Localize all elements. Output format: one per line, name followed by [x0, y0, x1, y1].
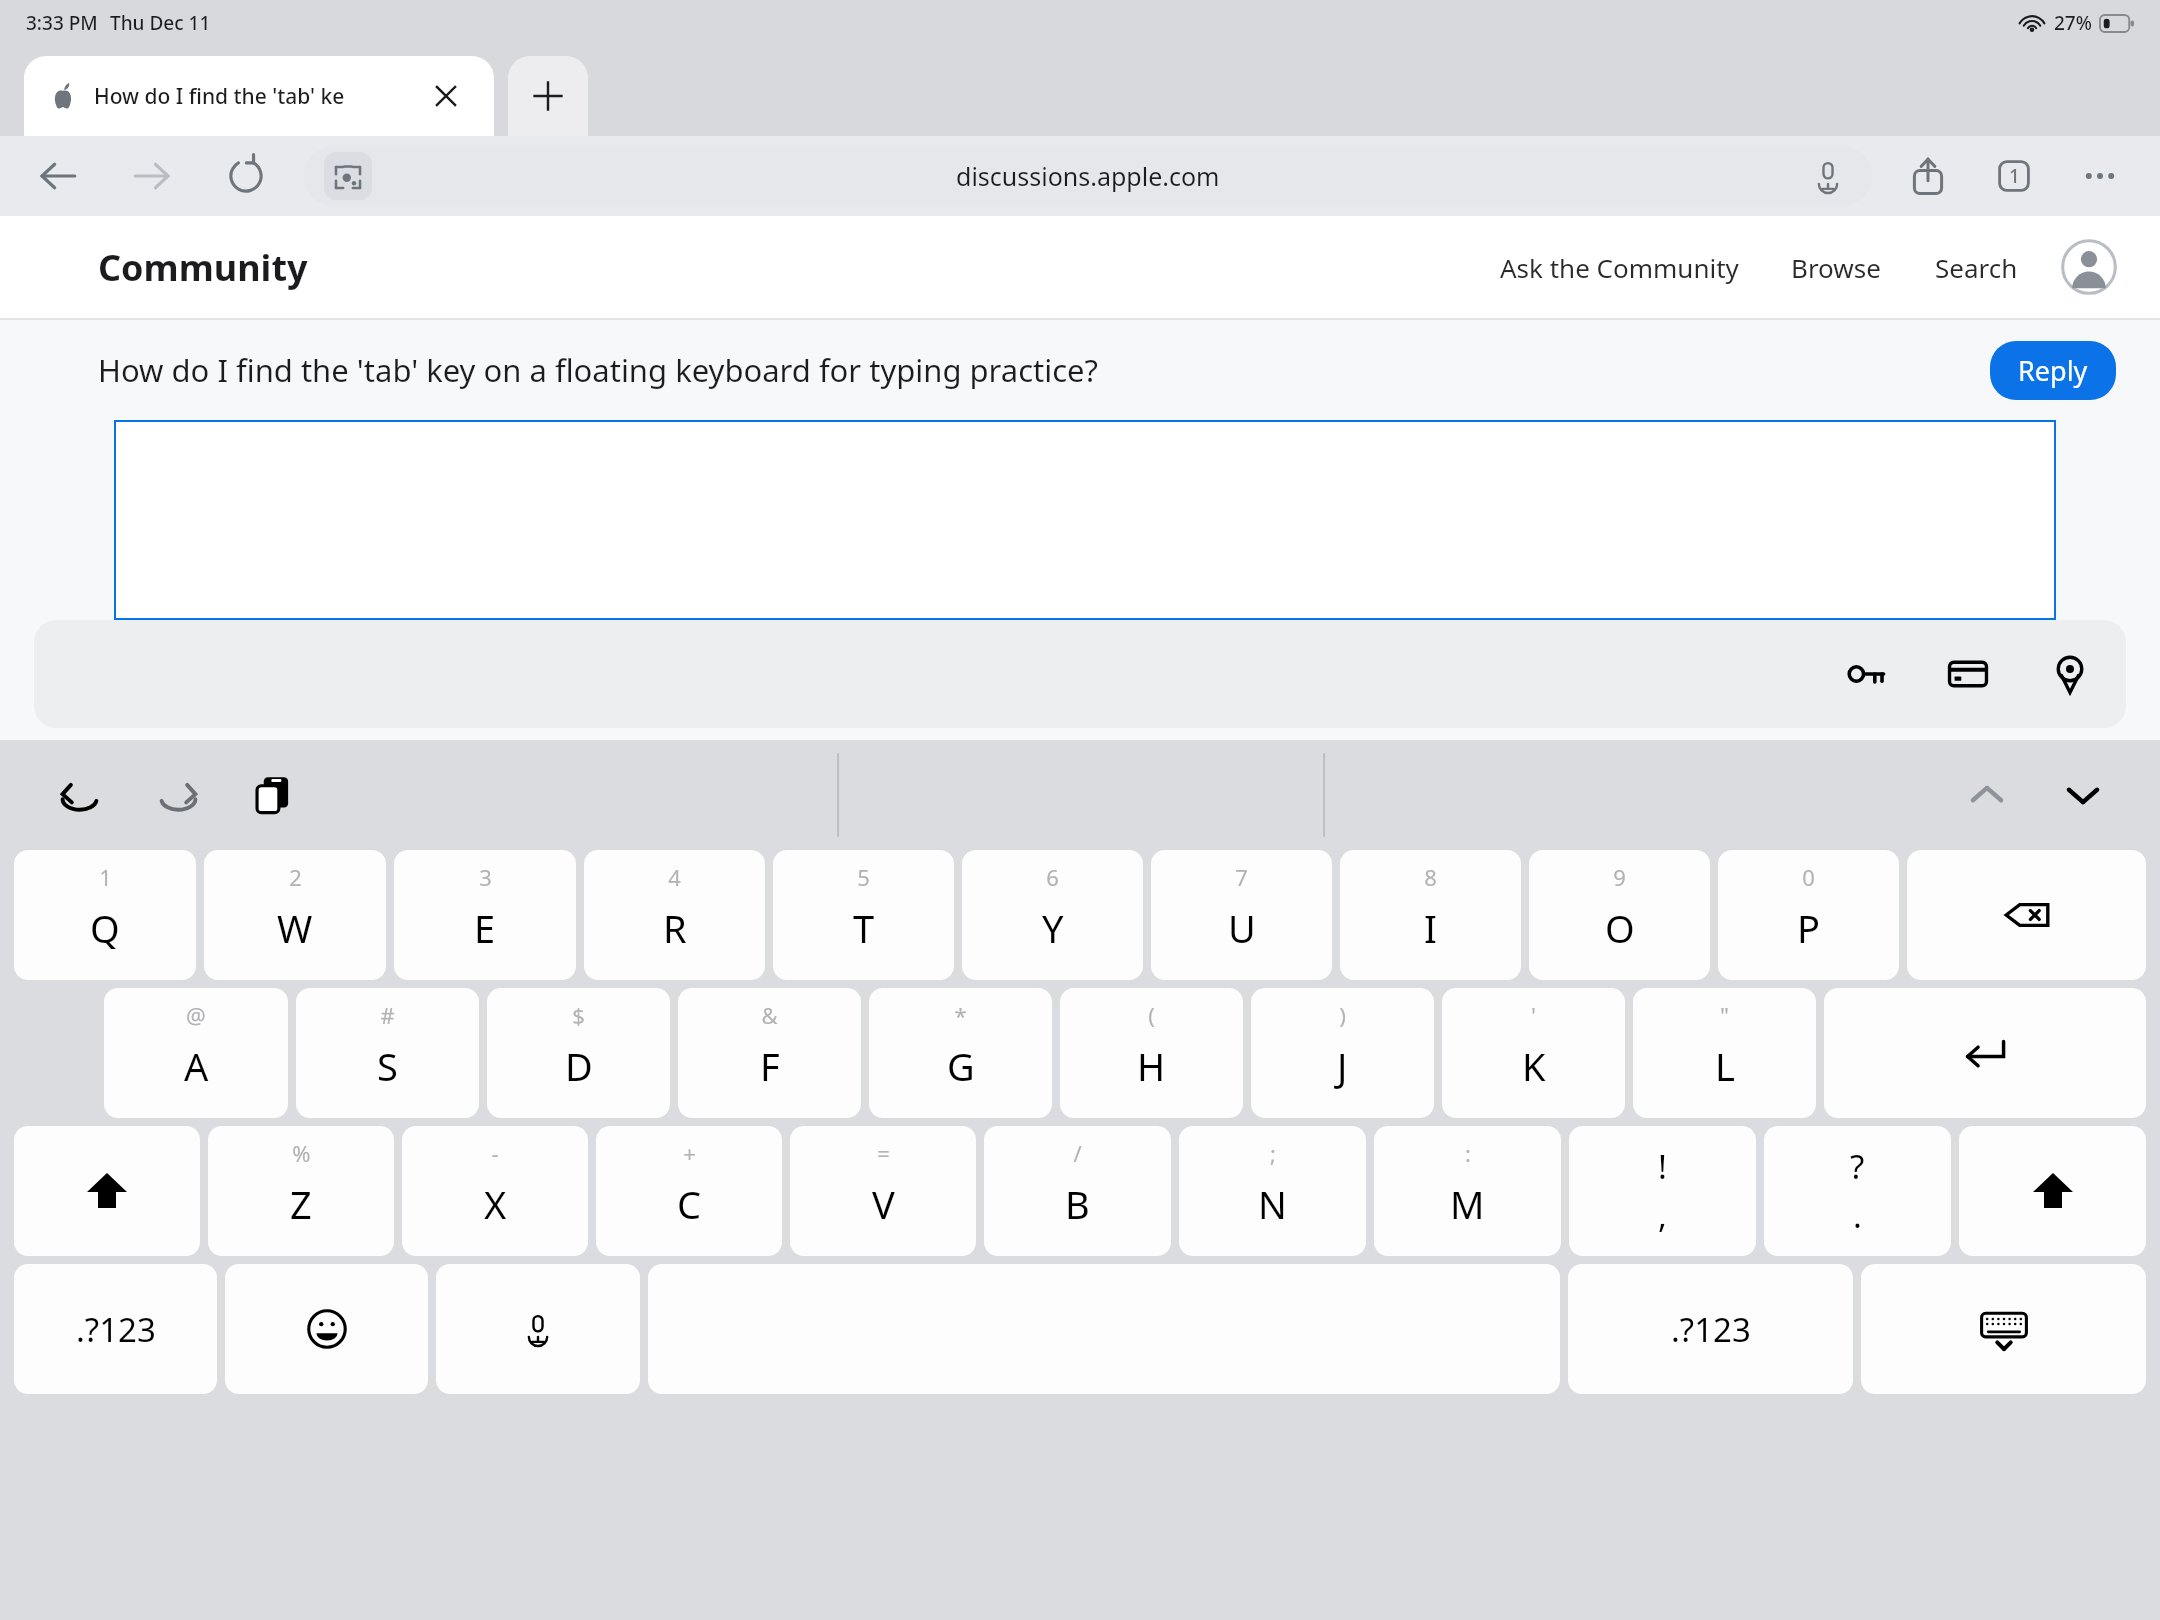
button[interactable]: .?123 — [1568, 1264, 1853, 1394]
button[interactable]: 9 — [1529, 850, 1710, 980]
button[interactable]: Paste — [242, 764, 304, 826]
staticText: .?123 — [1671, 1307, 1751, 1352]
button[interactable]: Address — [2040, 644, 2100, 704]
button[interactable]: Dictation — [436, 1264, 640, 1394]
staticText: Community — [98, 243, 308, 292]
staticText: V — [872, 1178, 895, 1230]
button[interactable]: Passwords — [1836, 644, 1896, 704]
button[interactable]: Shift — [1959, 1126, 2146, 1256]
staticText: # — [380, 1000, 395, 1030]
button[interactable]: Credit card — [1938, 644, 1998, 704]
button[interactable]: 5 — [773, 850, 954, 980]
button[interactable]: # — [296, 988, 479, 1118]
staticText: $ — [572, 1000, 585, 1030]
staticText: Browse — [1791, 250, 1881, 285]
button[interactable]: * — [869, 988, 1052, 1118]
button[interactable]: 0 — [1718, 850, 1899, 980]
staticText: .?123 — [76, 1307, 156, 1352]
staticText: R — [663, 902, 687, 954]
button[interactable]: Voice search — [1804, 152, 1852, 200]
staticText: W — [277, 902, 313, 954]
button[interactable]: Browse — [1785, 240, 1887, 295]
staticText: K — [1522, 1040, 1546, 1092]
staticText: = — [877, 1138, 890, 1168]
button[interactable]: New tab — [508, 56, 588, 136]
button[interactable]: 8 — [1340, 850, 1521, 980]
button[interactable]: Close tab — [426, 76, 466, 116]
button[interactable]: = — [790, 1126, 976, 1256]
staticText: E — [474, 902, 496, 954]
staticText: ' — [1531, 1000, 1536, 1030]
staticText: 9 — [1613, 862, 1626, 892]
button[interactable]: Backspace — [1907, 850, 2146, 980]
staticText: 8 — [1424, 862, 1437, 892]
staticText: P — [1797, 902, 1820, 954]
button[interactable]: - — [402, 1126, 588, 1256]
button[interactable]: Reply — [1990, 341, 2116, 400]
button[interactable]: 7 — [1151, 850, 1332, 980]
button[interactable]: Next field — [2052, 764, 2114, 826]
button[interactable]: Forward — [124, 148, 180, 204]
button[interactable]: Redo — [146, 764, 208, 826]
button[interactable]: ? — [1764, 1126, 1951, 1256]
button[interactable]: discussions.apple.com — [304, 146, 1872, 206]
button[interactable]: Back — [30, 148, 86, 204]
button[interactable]: ) — [1251, 988, 1434, 1118]
button[interactable]: Share — [1900, 148, 1956, 204]
button[interactable]: .?123 — [14, 1264, 217, 1394]
button[interactable]: Account — [2060, 238, 2118, 296]
button[interactable]: ' — [1442, 988, 1625, 1118]
button[interactable]: Return — [1824, 988, 2146, 1118]
staticText: G — [947, 1040, 975, 1092]
button[interactable]: How do I find the 'tab' ke — [24, 56, 494, 136]
button[interactable]: ! — [1569, 1126, 1756, 1256]
staticText: " — [1720, 1000, 1729, 1030]
button[interactable]: & — [678, 988, 861, 1118]
staticText: D — [565, 1040, 593, 1092]
button[interactable] — [114, 420, 2056, 620]
button[interactable]: Shift — [14, 1126, 200, 1256]
button[interactable]: 4 — [584, 850, 765, 980]
button[interactable]: / — [984, 1126, 1171, 1256]
staticText: N — [1258, 1178, 1287, 1230]
button[interactable]: : — [1374, 1126, 1561, 1256]
staticText: C — [677, 1178, 702, 1230]
button[interactable]: $ — [487, 988, 670, 1118]
button[interactable]: 1 — [14, 850, 196, 980]
button[interactable]: @ — [104, 988, 288, 1118]
button[interactable]: Reload — [218, 148, 274, 204]
button[interactable]: % — [208, 1126, 394, 1256]
staticText: A — [184, 1040, 209, 1092]
staticText: + — [683, 1138, 696, 1168]
staticText: : — [1465, 1138, 1471, 1168]
staticText: H — [1137, 1040, 1166, 1092]
staticText: 1 — [2009, 163, 2020, 189]
staticText: 27% — [2054, 10, 2092, 36]
button[interactable]: " — [1633, 988, 1816, 1118]
button[interactable]: + — [596, 1126, 782, 1256]
button[interactable]: Ask the Community — [1494, 240, 1745, 295]
staticText: Q — [90, 902, 120, 954]
button[interactable]: Hide keyboard — [1861, 1264, 2146, 1394]
button[interactable]: More — [2072, 148, 2128, 204]
button[interactable]: ; — [1179, 1126, 1366, 1256]
staticText: * — [954, 1000, 967, 1030]
button[interactable]: 3 — [394, 850, 576, 980]
staticText: Ask the Community — [1500, 250, 1739, 285]
staticText: Z — [290, 1178, 312, 1230]
button[interactable]: Emoji — [225, 1264, 428, 1394]
button[interactable]: Search — [1929, 240, 2024, 295]
staticText: Search — [1935, 250, 2018, 285]
button[interactable]: Previous field — [1956, 764, 2018, 826]
button[interactable]: 6 — [962, 850, 1143, 980]
button[interactable]: 2 — [204, 850, 386, 980]
staticText: S — [377, 1040, 398, 1092]
staticText: @ — [186, 1000, 206, 1030]
button[interactable]: Tabs — [1986, 148, 2042, 204]
button[interactable]: ( — [1060, 988, 1243, 1118]
staticText: 6 — [1046, 862, 1059, 892]
staticText: I — [1424, 902, 1437, 954]
button[interactable]: Undo — [50, 764, 112, 826]
staticText: 5 — [857, 862, 870, 892]
